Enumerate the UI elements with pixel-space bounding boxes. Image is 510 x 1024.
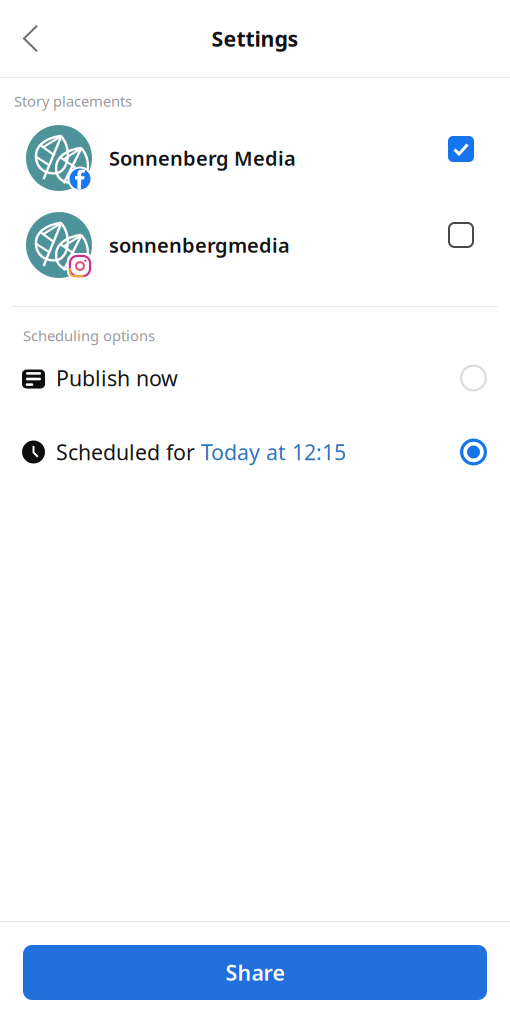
button[interactable]: Sonnenberg Media bbox=[0, 124, 510, 192]
button[interactable]: Publish now bbox=[0, 352, 510, 404]
staticText: Today at 12:15 bbox=[201, 438, 346, 466]
staticText: sonnenbergmedia bbox=[109, 232, 290, 258]
staticText: Story placements bbox=[14, 91, 132, 111]
staticText: Scheduled for bbox=[56, 438, 201, 466]
staticText: Sonnenberg Media bbox=[109, 145, 296, 171]
button[interactable]: Scheduled for bbox=[0, 404, 510, 500]
staticText: Scheduling options bbox=[23, 326, 155, 345]
staticText: Settings bbox=[211, 24, 298, 53]
button[interactable]: Share bbox=[23, 945, 487, 1000]
staticText: Share bbox=[225, 958, 284, 987]
button[interactable]: sonnenbergmedia bbox=[0, 192, 510, 298]
button[interactable]: Back bbox=[0, 12, 55, 64]
staticText: Publish now bbox=[56, 364, 178, 392]
